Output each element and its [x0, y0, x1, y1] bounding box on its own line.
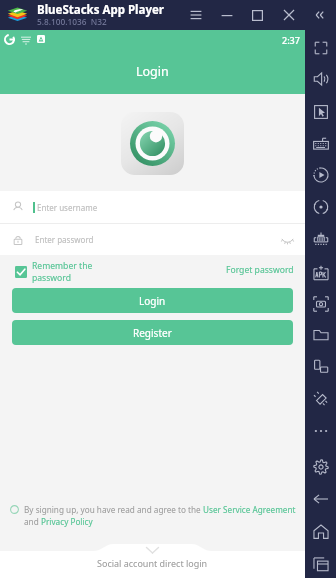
staticText: Register	[133, 326, 172, 340]
button[interactable]: Shake	[305, 383, 336, 414]
button[interactable]: Rotate	[305, 351, 336, 382]
button[interactable]: Remember the password	[15, 260, 93, 284]
button[interactable]: Login	[12, 288, 293, 313]
button[interactable]: Keyboard controls	[305, 128, 336, 159]
button[interactable]: Back	[305, 483, 336, 514]
staticText: Remember the password	[32, 260, 93, 284]
button[interactable]: Recent apps	[305, 548, 336, 578]
staticText: By signing up, you have read and agree t…	[24, 504, 203, 515]
button[interactable]: Game controls	[305, 96, 336, 127]
button[interactable]: Volume	[305, 63, 336, 94]
button[interactable]: Maximize	[242, 0, 273, 30]
button[interactable]: Media manager	[305, 319, 336, 350]
button[interactable]: Menu	[180, 0, 211, 30]
button[interactable]: Enter password	[0, 224, 305, 255]
button[interactable]: Minimize	[211, 0, 242, 30]
button[interactable]: Sync operations	[305, 191, 336, 222]
staticText: BlueStacks App Player	[37, 2, 164, 18]
button[interactable]: Enter username	[0, 191, 305, 223]
button[interactable]: Social account direct login	[97, 557, 208, 569]
button[interactable]: Home	[305, 516, 336, 547]
staticText: and	[24, 516, 41, 527]
staticText: Forget password	[226, 264, 294, 276]
button[interactable]: Multi instance	[305, 223, 336, 254]
button[interactable]: Fullscreen	[305, 32, 336, 63]
staticText: Enter password	[35, 234, 94, 245]
button[interactable]: Register	[12, 320, 293, 345]
staticText: 5.8.100.1036 N32	[37, 16, 107, 27]
button[interactable]: Close	[273, 0, 304, 30]
button[interactable]: User Service Agreement	[203, 504, 296, 515]
button[interactable]: Settings	[305, 451, 336, 482]
button[interactable]: Privacy Policy	[41, 516, 93, 527]
button[interactable]: Forget password	[226, 264, 294, 276]
staticText: Enter username	[37, 202, 98, 213]
staticText: 2:37	[282, 34, 300, 46]
button[interactable]: More	[305, 415, 336, 446]
button[interactable]: Show password	[274, 227, 300, 253]
staticText: Login	[136, 63, 169, 80]
button[interactable]: Collapse sidebar	[304, 0, 335, 30]
staticText: Login	[139, 294, 166, 308]
button[interactable]: Agree to terms	[9, 504, 20, 515]
button[interactable]: Macro recorder	[305, 159, 336, 190]
button[interactable]: Screenshot	[305, 288, 336, 319]
button[interactable]: Install APK	[305, 257, 336, 288]
